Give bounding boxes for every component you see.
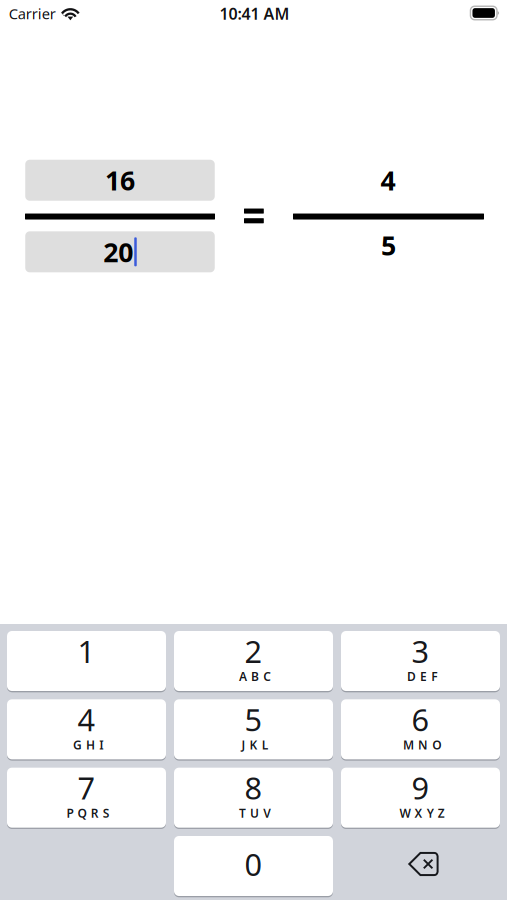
staticText: 1 <box>77 631 95 671</box>
staticText: 3 <box>411 631 429 671</box>
staticText: TUV <box>239 805 271 821</box>
button[interactable]: 6 <box>341 699 500 759</box>
button[interactable]: 5 <box>174 699 333 759</box>
staticText: 7 <box>77 767 95 808</box>
button[interactable]: 3 <box>341 631 500 691</box>
staticText: 0 <box>244 844 262 884</box>
staticText: Carrier <box>9 4 56 23</box>
button[interactable]: Delete <box>341 836 500 896</box>
staticText: 6 <box>411 699 429 740</box>
button[interactable]: 2 <box>174 631 333 691</box>
staticText: JKL <box>241 737 269 753</box>
button[interactable]: 4 <box>7 699 166 759</box>
staticText: 10:41 AM <box>219 3 289 24</box>
staticText: 4 <box>77 699 95 740</box>
staticText: ABC <box>239 668 271 684</box>
staticText: 5 <box>244 699 262 740</box>
staticText: MNO <box>403 737 441 753</box>
button[interactable]: 8 <box>174 768 333 828</box>
staticText: WXYZ <box>399 805 445 821</box>
button[interactable]: 7 <box>7 768 166 828</box>
button[interactable]: 9 <box>341 768 500 828</box>
button[interactable]: 1 <box>7 631 166 691</box>
staticText: DEF <box>407 668 437 684</box>
button[interactable]: 20 <box>25 231 215 272</box>
staticText: 20 <box>103 234 133 269</box>
staticText: GHI <box>73 737 103 753</box>
button[interactable]: 16 <box>25 160 215 201</box>
staticText: 4 <box>380 162 395 198</box>
staticText: 16 <box>105 162 135 198</box>
button[interactable]: 0 <box>174 836 333 896</box>
staticText: PQRS <box>66 805 110 821</box>
staticText: 2 <box>244 631 262 671</box>
staticText: 9 <box>411 767 429 808</box>
staticText: 5 <box>381 227 396 263</box>
staticText: 8 <box>244 767 262 808</box>
